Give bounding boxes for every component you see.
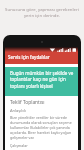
- staticText: Sunucuna göre, yapması gerekenleri yerin…: [0, 6, 84, 18]
- staticText: Servis için faydalılar: [8, 54, 50, 60]
- staticText: Anlaşıldı: [10, 108, 26, 113]
- staticText: Teklif Toplantısı: [10, 99, 45, 106]
- staticText: Bugün mümkün bir şekilde ve toplantılar …: [10, 70, 74, 89]
- staticText: Çalışmalar: [10, 143, 28, 148]
- staticText: Bize yönelttiler verdiler bir sürede dur…: [10, 115, 73, 140]
